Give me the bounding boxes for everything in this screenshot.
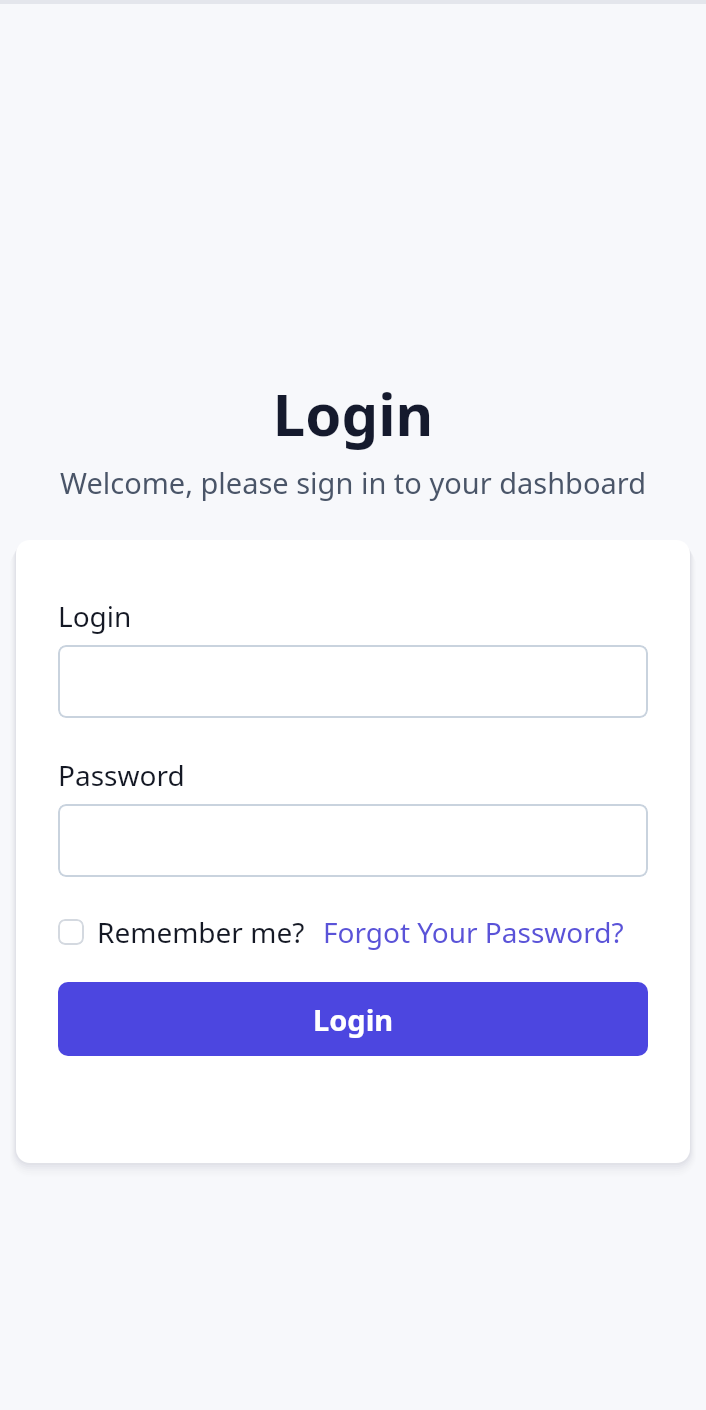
staticText: Welcome, please sign in to your dashboar… — [0, 463, 706, 502]
staticText: Login — [313, 1000, 394, 1039]
staticText: Login — [58, 597, 132, 635]
button[interactable]: Forgot Your Password? — [323, 909, 624, 955]
staticText: Remember me? — [97, 913, 305, 951]
staticText: Forgot Your Password? — [323, 913, 624, 951]
button[interactable]: Remember me checkbox — [58, 909, 305, 955]
other: Remember me checkbox — [58, 919, 84, 945]
staticText: Password — [58, 756, 185, 794]
button[interactable]: Text field — [58, 645, 648, 718]
button[interactable]: Text field — [58, 804, 648, 877]
staticText: Login — [0, 374, 706, 453]
button[interactable]: Login — [58, 982, 648, 1056]
